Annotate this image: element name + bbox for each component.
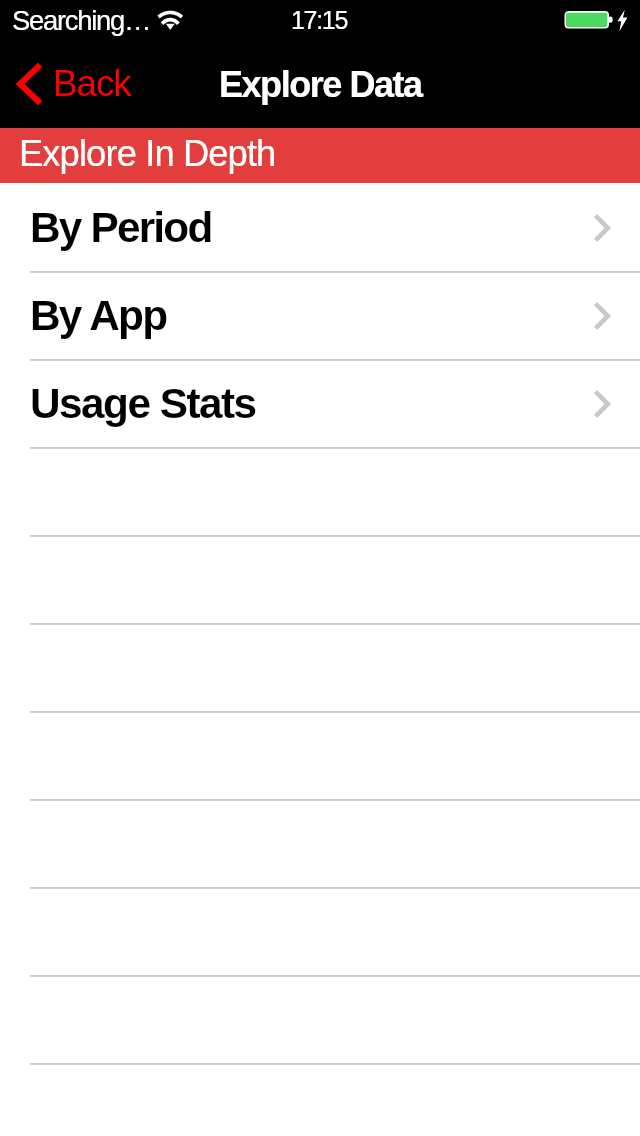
staticText: By App xyxy=(30,292,167,339)
button[interactable]: Back xyxy=(0,40,142,128)
staticText: 17:15 xyxy=(291,6,348,34)
other: Back xyxy=(17,64,41,104)
button[interactable]: Usage Stats xyxy=(0,359,640,447)
staticText: By Period xyxy=(30,204,212,251)
staticText: Searching… xyxy=(12,5,151,36)
staticText: Back xyxy=(53,63,131,104)
button[interactable]: By App xyxy=(0,271,640,359)
staticText: Explore In Depth xyxy=(19,133,276,174)
staticText: Explore Data xyxy=(219,64,422,104)
other: Battery charging xyxy=(563,8,633,32)
other: Wi-Fi signal xyxy=(157,11,184,30)
staticText: Usage Stats xyxy=(30,380,256,427)
button[interactable]: By Period xyxy=(0,183,640,271)
